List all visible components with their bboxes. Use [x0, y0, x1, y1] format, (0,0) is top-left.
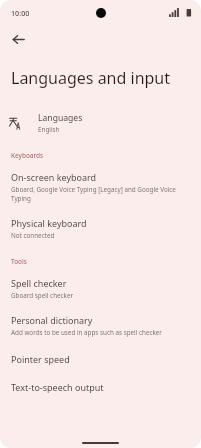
staticText: Pointer speed — [11, 353, 70, 365]
staticText: Physical keyboard — [11, 217, 87, 229]
staticText: Not connected — [11, 231, 55, 240]
staticText: 10:00 — [11, 8, 30, 18]
button[interactable]: On-screen keyboard — [0, 170, 201, 204]
staticText: Add words to be used in apps such as spe… — [11, 328, 162, 337]
button[interactable]: Personal dictionary — [0, 313, 201, 338]
button[interactable]: Text-to-speech output — [0, 380, 201, 394]
staticText: Text-to-speech output — [11, 381, 104, 393]
staticText: Personal dictionary — [11, 314, 93, 326]
button[interactable]: Pointer speed — [0, 352, 201, 366]
button[interactable]: Languages — [0, 110, 201, 136]
staticText: On-screen keyboard — [11, 171, 97, 183]
staticText: Languages — [38, 112, 83, 124]
button[interactable]: Spell checker — [0, 276, 201, 301]
staticText: English — [38, 125, 60, 134]
button[interactable]: Physical keyboard — [0, 216, 201, 241]
staticText: Gboard, Google Voice Typing [Legacy] and… — [11, 185, 190, 203]
staticText: Languages and input — [11, 67, 171, 89]
staticText: Spell checker — [11, 277, 67, 289]
button[interactable]: Back — [4, 25, 32, 53]
staticText: Tools — [11, 257, 27, 266]
staticText: Keyboards — [11, 151, 44, 160]
staticText: Gboard spell checker — [11, 291, 74, 300]
